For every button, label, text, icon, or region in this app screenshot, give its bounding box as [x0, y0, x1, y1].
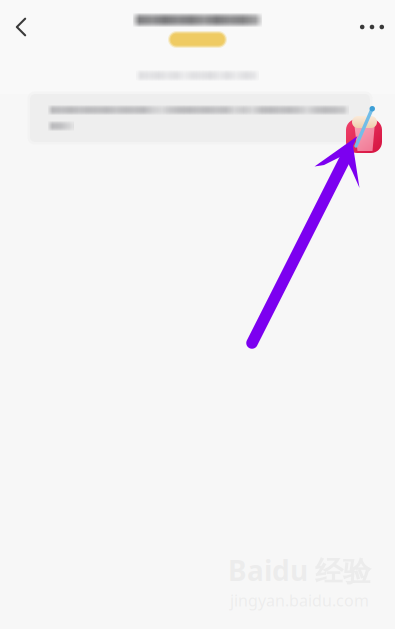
button[interactable]: Back	[0, 5, 43, 49]
staticText: Baidu 经验	[228, 551, 371, 589]
button[interactable]	[30, 94, 370, 142]
button[interactable]: More	[350, 5, 394, 49]
staticText: jingyan.baidu.com	[230, 590, 369, 611]
